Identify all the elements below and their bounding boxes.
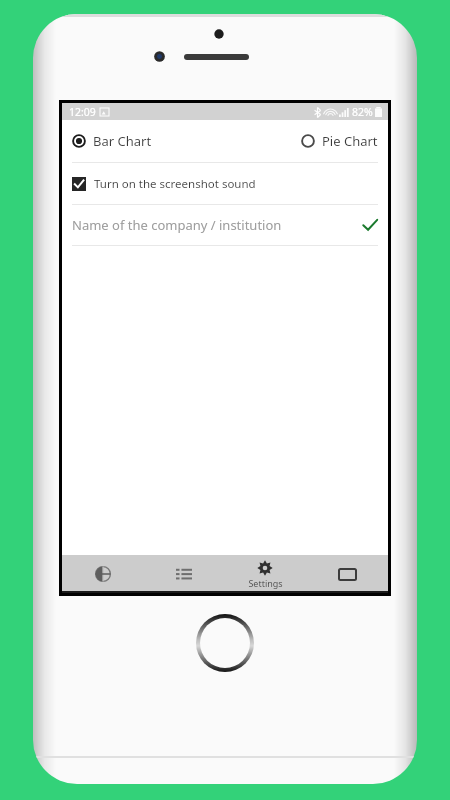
- button[interactable]: Pie chart: [62, 555, 143, 593]
- button[interactable]: Pie Chart: [301, 132, 378, 150]
- button[interactable]: Turn on the screenshot sound: [62, 163, 388, 204]
- staticText: Name of the company / institution: [72, 216, 362, 234]
- button[interactable]: Bar Chart: [72, 132, 152, 150]
- other: Confirm name: [362, 218, 378, 232]
- staticText: 82%: [352, 105, 373, 119]
- button[interactable]: Name of the company / institution: [62, 205, 388, 245]
- staticText: Pie Chart: [322, 132, 378, 150]
- staticText: Bar Chart: [93, 132, 152, 150]
- button[interactable]: Home: [200, 618, 250, 668]
- button[interactable]: Layout: [306, 555, 388, 593]
- button[interactable]: List: [143, 555, 224, 593]
- staticText: 12:09: [69, 105, 96, 119]
- staticText: Turn on the screenshot sound: [94, 176, 256, 192]
- button[interactable]: Settings: [224, 555, 306, 593]
- staticText: Settings: [248, 577, 283, 589]
